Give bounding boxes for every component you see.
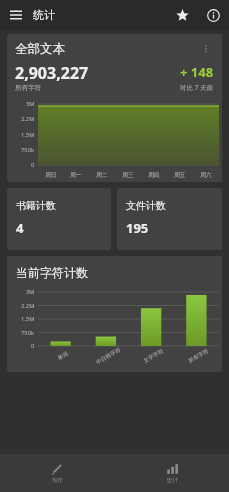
staticText: 单词	[56, 350, 69, 362]
staticText: 750k	[21, 146, 35, 154]
button[interactable]: 全部文本	[7, 34, 222, 182]
staticText: 当前字符计数	[16, 265, 88, 280]
staticText: 中日韩字符	[95, 346, 122, 366]
button[interactable]: 当前字符计数	[7, 256, 222, 372]
staticText: 750k	[21, 329, 35, 337]
staticText: 所有字符	[187, 348, 210, 365]
button[interactable]: Favorites	[170, 3, 194, 27]
staticText: 0	[31, 161, 35, 169]
staticText: 周二	[96, 171, 108, 178]
staticText: 周六	[200, 171, 212, 178]
staticText: 写作	[52, 477, 63, 484]
staticText: 周三	[122, 171, 134, 178]
button[interactable]: 文件计数	[117, 188, 222, 250]
staticText: 书籍计数	[16, 199, 56, 212]
button[interactable]: 书籍计数	[7, 188, 111, 250]
staticText: 统计	[33, 8, 55, 22]
staticText: 3M	[26, 100, 35, 108]
staticText: 统计	[167, 477, 178, 484]
button[interactable]: 统计	[114, 454, 229, 492]
button[interactable]: Info	[201, 3, 225, 27]
staticText: 2.2M	[21, 302, 35, 310]
staticText: 195	[126, 219, 149, 237]
staticText: + 148	[180, 63, 214, 81]
staticText: 2,903,227	[15, 62, 89, 84]
staticText: 周四	[148, 171, 160, 178]
staticText: 3M	[26, 288, 35, 296]
staticText: 所有字符	[15, 84, 41, 92]
staticText: 周五	[174, 171, 186, 178]
button[interactable]: 写作	[0, 454, 114, 492]
staticText: 1.5M	[21, 131, 35, 139]
staticText: 0	[31, 342, 35, 350]
staticText: 周一	[70, 171, 82, 178]
staticText: 文字字符	[142, 348, 165, 365]
button[interactable]: Menu	[4, 3, 28, 27]
staticText: 4	[16, 219, 24, 237]
staticText: 2.2M	[21, 115, 35, 123]
button[interactable]: More options	[198, 41, 214, 57]
staticText: 对比 7 天前	[180, 83, 214, 92]
staticText: 全部文本	[15, 41, 198, 57]
staticText: 文件计数	[126, 199, 166, 212]
staticText: 周日	[45, 171, 57, 178]
staticText: 1.5M	[21, 315, 35, 323]
